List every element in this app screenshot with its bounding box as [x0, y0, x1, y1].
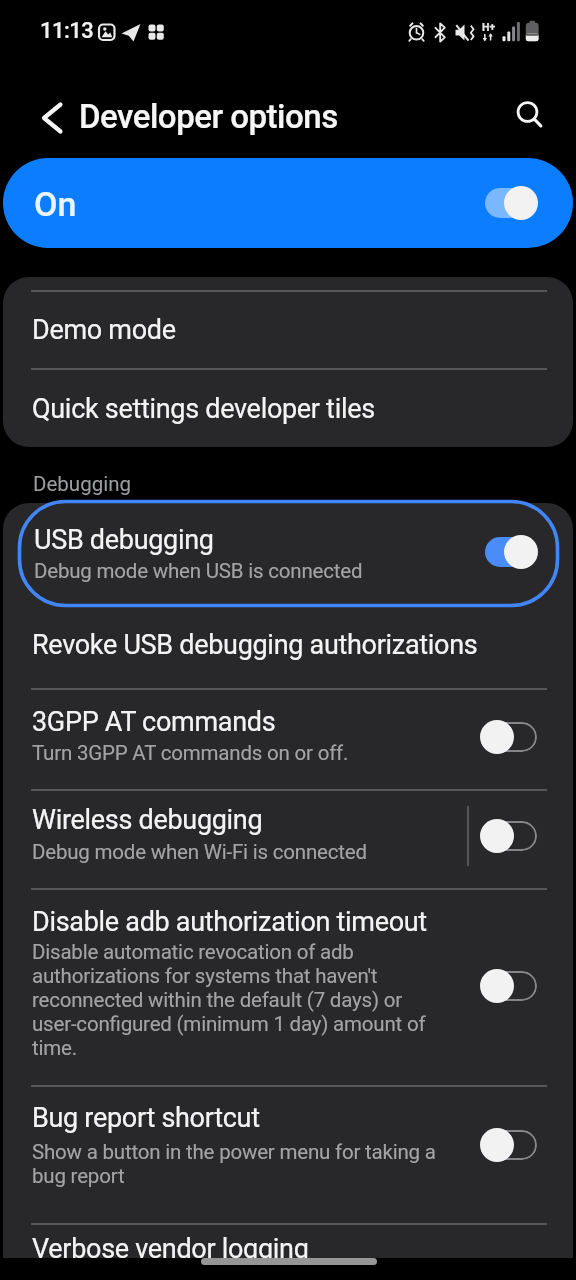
staticText: Turn 3GPP AT commands on or off.	[32, 741, 349, 765]
staticText: Verbose vendor logging	[32, 1233, 309, 1265]
staticText: On	[34, 184, 77, 224]
button[interactable]	[485, 186, 537, 220]
staticText: Disable adb authorization timeout	[32, 906, 427, 938]
staticText: 3GPP AT commands	[32, 706, 276, 738]
staticText: Quick settings developer tiles	[32, 393, 375, 425]
button[interactable]	[485, 969, 537, 1003]
staticText: Developer options	[79, 97, 338, 136]
button[interactable]	[3, 689, 573, 789]
staticText: Debug mode when USB is connected	[34, 559, 363, 583]
button[interactable]	[485, 535, 537, 569]
button[interactable]	[3, 1086, 573, 1223]
staticText: 11:13	[40, 18, 94, 44]
button[interactable]	[3, 889, 573, 1085]
staticText: Revoke USB debugging authorizations	[32, 629, 478, 661]
staticText: Debugging	[33, 472, 131, 496]
staticText: H+	[482, 21, 496, 33]
button[interactable]	[3, 1224, 573, 1280]
staticText: USB debugging	[34, 524, 214, 556]
button[interactable]	[28, 94, 76, 142]
button[interactable]	[3, 503, 573, 607]
staticText: Bug report shortcut	[32, 1102, 260, 1134]
button[interactable]	[485, 720, 537, 754]
staticText: Demo mode	[32, 314, 176, 346]
button[interactable]	[3, 291, 573, 369]
staticText: Wireless debugging	[32, 804, 263, 836]
staticText: Debug mode when Wi-Fi is connected	[32, 840, 367, 864]
staticText: Disable automatic revocation of adb auth…	[32, 940, 426, 1060]
button[interactable]	[3, 369, 573, 447]
button[interactable]	[485, 819, 537, 853]
staticText: Show a button in the power menu for taki…	[32, 1140, 436, 1188]
button[interactable]	[485, 1128, 537, 1162]
button[interactable]	[3, 158, 573, 248]
button[interactable]	[3, 607, 573, 688]
button[interactable]	[506, 90, 554, 138]
button[interactable]	[3, 790, 573, 888]
